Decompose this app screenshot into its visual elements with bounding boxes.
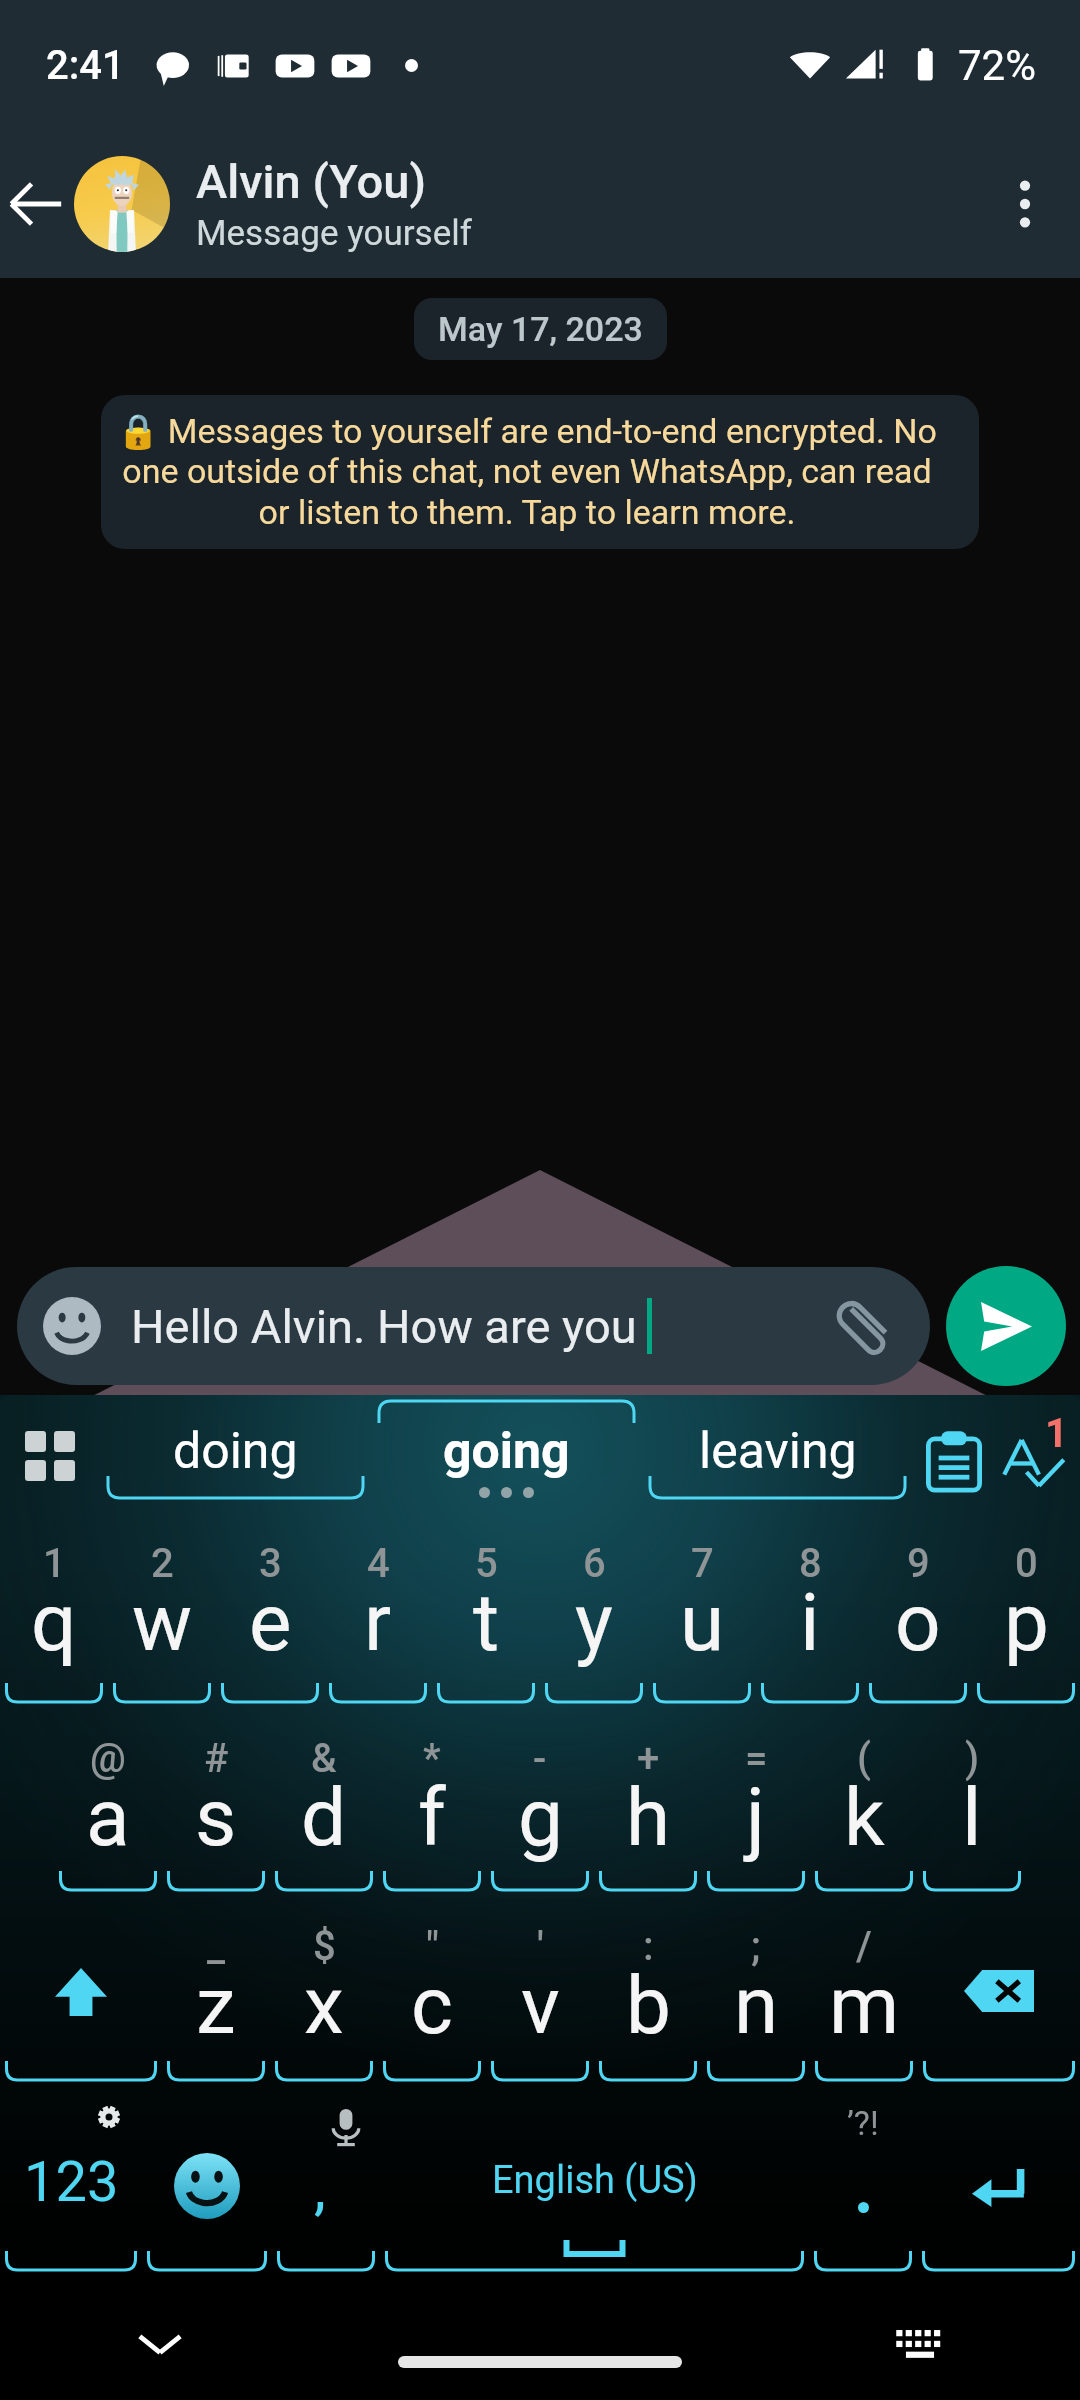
- staticText: d: [301, 1771, 347, 1865]
- button[interactable]: leaving: [642, 1395, 913, 1512]
- button[interactable]: ): [918, 1707, 1026, 1895]
- staticText: 7: [691, 1540, 714, 1587]
- staticText: s: [195, 1771, 237, 1865]
- button[interactable]: Numbers: [0, 2085, 142, 2275]
- button[interactable]: 🔒 Messages to yourself are end-to-end en…: [101, 395, 979, 549]
- staticText: l: [962, 1771, 982, 1865]
- button[interactable]: =: [702, 1707, 810, 1895]
- button[interactable]: 0: [972, 1512, 1080, 1707]
- button[interactable]: +: [594, 1707, 702, 1895]
- button[interactable]: ;: [702, 1895, 810, 2085]
- staticText: 2:41: [46, 42, 125, 89]
- button[interactable]: /: [810, 1895, 918, 2085]
- staticText: 0: [1015, 1540, 1038, 1587]
- button[interactable]: Comma: [272, 2085, 380, 2275]
- staticText: 🔒 Messages to yourself are end-to-end en…: [117, 411, 937, 533]
- button[interactable]: 6: [540, 1512, 648, 1707]
- button[interactable]: $: [270, 1895, 378, 2085]
- staticText: Alvin (You): [196, 154, 426, 209]
- staticText: i: [800, 1576, 820, 1670]
- staticText: ,: [314, 2152, 326, 2222]
- staticText: leaving: [699, 1422, 857, 1481]
- staticText: 6: [583, 1540, 606, 1587]
- button[interactable]: @: [54, 1707, 162, 1895]
- button[interactable]: (: [810, 1707, 918, 1895]
- button[interactable]: Switch keyboard: [880, 2303, 960, 2383]
- staticText: b: [626, 1959, 671, 2053]
- staticText: *: [423, 1735, 441, 1782]
- staticText: _: [207, 1923, 226, 1970]
- staticText: q: [31, 1576, 77, 1670]
- staticText: n: [734, 1959, 779, 2053]
- staticText: 9: [907, 1540, 930, 1587]
- button[interactable]: Enter: [917, 2085, 1080, 2275]
- button[interactable]: Space: [380, 2085, 809, 2275]
- staticText: a: [86, 1771, 130, 1865]
- staticText: =: [745, 1735, 768, 1782]
- button[interactable]: Backspace: [918, 1895, 1080, 2085]
- button[interactable]: Hello Alvin. How are you: [17, 1267, 930, 1385]
- staticText: ': [537, 1923, 544, 1970]
- button[interactable]: going: [371, 1395, 642, 1512]
- button[interactable]: Clipboard: [913, 1395, 995, 1512]
- staticText: Hello Alvin. How are you: [131, 1299, 637, 1354]
- staticText: $: [313, 1923, 336, 1970]
- button[interactable]: Keyboard toolbar: [0, 1395, 100, 1512]
- button[interactable]: More options: [970, 130, 1080, 278]
- staticText: /: [856, 1923, 872, 1970]
- button[interactable]: _: [162, 1895, 270, 2085]
- button[interactable]: Period: [809, 2085, 917, 2275]
- button[interactable]: 8: [756, 1512, 864, 1707]
- button[interactable]: 7: [648, 1512, 756, 1707]
- staticText: 72%: [958, 41, 1036, 90]
- staticText: u: [680, 1576, 725, 1670]
- button[interactable]: 5: [432, 1512, 540, 1707]
- staticText: Message yourself: [196, 213, 472, 254]
- staticText: t: [473, 1576, 500, 1670]
- staticText: 3: [259, 1540, 282, 1587]
- staticText: z: [196, 1959, 236, 2053]
- staticText: &: [311, 1735, 337, 1782]
- staticText: ’?!: [847, 2103, 879, 2143]
- button[interactable]: 3: [216, 1512, 324, 1707]
- button[interactable]: ": [378, 1895, 486, 2085]
- staticText: r: [364, 1576, 392, 1670]
- staticText: 1: [1045, 1410, 1068, 1457]
- button[interactable]: ': [486, 1895, 594, 2085]
- staticText: e: [249, 1576, 292, 1670]
- staticText: p: [1004, 1576, 1049, 1670]
- button[interactable]: Back: [0, 130, 72, 278]
- button[interactable]: #: [162, 1707, 270, 1895]
- button[interactable]: Spell check: [995, 1395, 1080, 1512]
- button[interactable]: 9: [864, 1512, 972, 1707]
- button[interactable]: 2: [108, 1512, 216, 1707]
- staticText: 8: [799, 1540, 822, 1587]
- staticText: w: [132, 1576, 193, 1670]
- button[interactable]: Emoji: [142, 2085, 272, 2275]
- staticText: #: [204, 1735, 229, 1782]
- button[interactable]: Hide keyboard: [120, 2303, 200, 2383]
- button[interactable]: Alvin (You): [196, 130, 970, 278]
- staticText: :: [643, 1923, 654, 1970]
- staticText: -: [533, 1735, 547, 1782]
- button[interactable]: 1: [0, 1512, 108, 1707]
- button[interactable]: Shift: [0, 1895, 162, 2085]
- staticText: ;: [751, 1923, 761, 1970]
- button[interactable]: doing: [100, 1395, 371, 1512]
- button[interactable]: Profile photo: [74, 156, 170, 252]
- staticText: y: [575, 1576, 613, 1670]
- button[interactable]: May 17, 2023: [414, 298, 667, 360]
- button[interactable]: Send: [946, 1266, 1066, 1386]
- staticText: going: [443, 1422, 570, 1481]
- button[interactable]: &: [270, 1707, 378, 1895]
- button[interactable]: 4: [324, 1512, 432, 1707]
- staticText: 123: [24, 2149, 119, 2215]
- button[interactable]: -: [486, 1707, 594, 1895]
- button[interactable]: :: [594, 1895, 702, 2085]
- staticText: English (US): [492, 2158, 698, 2203]
- staticText: k: [844, 1771, 885, 1865]
- staticText: ): [965, 1735, 980, 1782]
- staticText: ": [426, 1923, 439, 1970]
- staticText: doing: [173, 1422, 298, 1481]
- button[interactable]: *: [378, 1707, 486, 1895]
